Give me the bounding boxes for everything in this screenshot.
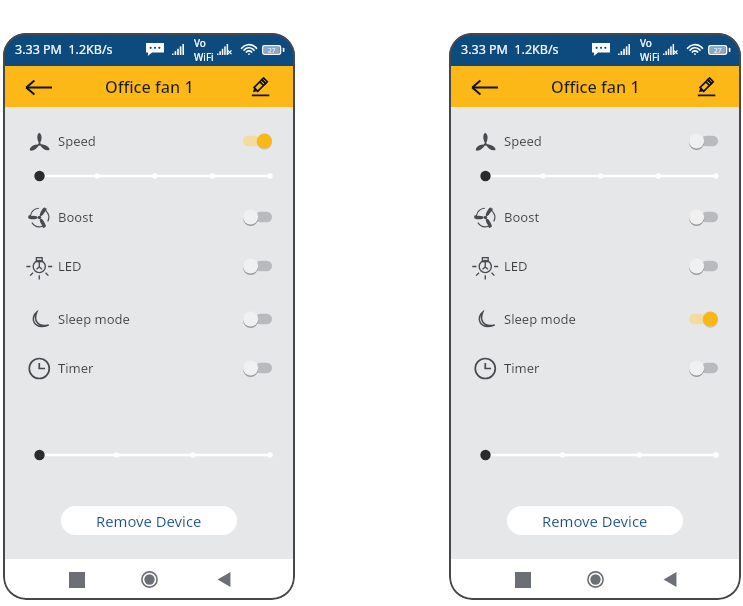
button[interactable]: Back — [21, 70, 55, 104]
button[interactable]: Edit name — [244, 70, 278, 104]
button[interactable]: Recent apps — [487, 559, 559, 600]
button[interactable]: Slider — [449, 446, 741, 464]
staticText: 27 — [714, 46, 722, 55]
button[interactable]: Boost — [3, 202, 295, 232]
staticText: Vo — [194, 36, 206, 50]
staticText: 3.33 PM 1.2KB/s — [461, 41, 559, 58]
button[interactable]: Back — [631, 559, 703, 600]
staticText: Office fan 1 — [551, 76, 640, 98]
button[interactable]: Home — [559, 559, 631, 600]
button[interactable]: Recent apps — [41, 559, 113, 600]
button[interactable]: Remove Device — [507, 506, 683, 535]
button[interactable]: Back — [467, 70, 501, 104]
button[interactable]: Slider — [3, 446, 295, 464]
button[interactable]: Toggle — [243, 132, 272, 150]
button[interactable]: Sleep mode — [3, 304, 295, 334]
staticText: Sleep mode — [58, 310, 130, 328]
staticText: LED — [58, 257, 82, 275]
button[interactable]: Toggle — [243, 208, 272, 226]
button[interactable]: Toggle — [243, 359, 272, 377]
staticText: WiFi — [194, 50, 214, 64]
staticText: Vo — [640, 36, 652, 50]
button[interactable]: LED — [3, 251, 295, 281]
button[interactable]: Timer — [3, 353, 295, 383]
button[interactable]: Slider — [449, 167, 741, 185]
button[interactable]: Slider — [3, 167, 295, 185]
button[interactable]: Toggle — [689, 208, 718, 226]
button[interactable]: Speed — [3, 126, 295, 156]
staticText: Timer — [58, 359, 94, 377]
button[interactable]: Toggle — [243, 257, 272, 275]
button[interactable]: Remove Device — [61, 506, 237, 535]
staticText: Boost — [504, 208, 540, 226]
staticText: Remove Device — [542, 511, 648, 531]
button[interactable]: Toggle — [689, 310, 718, 328]
staticText: Remove Device — [96, 511, 202, 531]
button[interactable]: LED — [449, 251, 741, 281]
staticText: WiFi — [640, 50, 660, 64]
button[interactable]: Timer — [449, 353, 741, 383]
button[interactable]: Home — [113, 559, 185, 600]
staticText: LED — [504, 257, 528, 275]
button[interactable]: Back — [185, 559, 257, 600]
staticText: Speed — [58, 132, 96, 150]
staticText: Speed — [504, 132, 542, 150]
staticText: Sleep mode — [504, 310, 576, 328]
button[interactable]: Toggle — [243, 310, 272, 328]
staticText: Boost — [58, 208, 94, 226]
staticText: Office fan 1 — [105, 76, 194, 98]
staticText: Timer — [504, 359, 540, 377]
button[interactable]: Edit name — [690, 70, 724, 104]
staticText: 27 — [268, 46, 276, 55]
button[interactable]: Speed — [449, 126, 741, 156]
button[interactable]: Toggle — [689, 359, 718, 377]
button[interactable]: Sleep mode — [449, 304, 741, 334]
button[interactable]: Toggle — [689, 132, 718, 150]
staticText: 3.33 PM 1.2KB/s — [15, 41, 113, 58]
button[interactable]: Toggle — [689, 257, 718, 275]
button[interactable]: Boost — [449, 202, 741, 232]
